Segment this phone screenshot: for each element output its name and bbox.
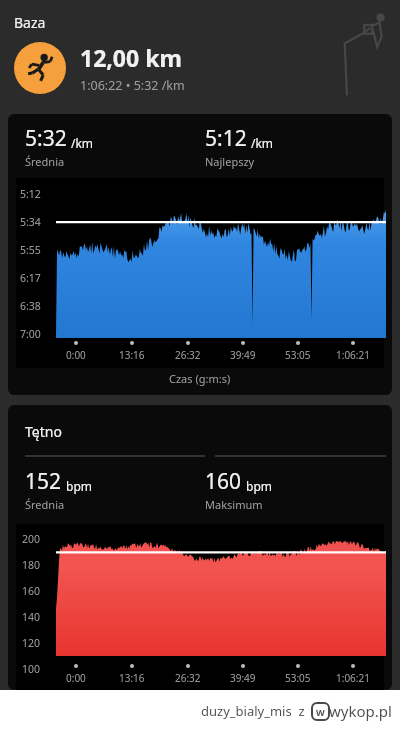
staticText: 180 [22, 558, 41, 572]
staticText: 6:38 [20, 299, 41, 313]
staticText: 13:16 [119, 671, 145, 685]
staticText: 6:17 [20, 271, 41, 285]
staticText: W [316, 706, 325, 718]
staticText: 160 [205, 467, 242, 496]
staticText: 120 [22, 636, 41, 650]
button[interactable]: 12,00 km [14, 42, 185, 94]
other: Route map [338, 10, 394, 98]
staticText: 26:32 [175, 348, 201, 362]
staticText: 5:12 [20, 187, 41, 201]
staticText: 39:49 [230, 671, 256, 685]
staticText: /km [71, 135, 94, 151]
staticText: 160 [22, 584, 41, 598]
staticText: 39:49 [230, 348, 256, 362]
staticText: 1:06:21 [336, 671, 370, 685]
staticText: 5:12 [205, 124, 247, 153]
staticText: 1:06:21 [336, 348, 370, 362]
staticText: 13:16 [119, 348, 145, 362]
staticText: 5:55 [20, 243, 41, 257]
staticText: 140 [22, 610, 41, 624]
staticText: 152 [25, 467, 62, 496]
staticText: duzy_bialy_mis z [201, 702, 305, 720]
staticText: 0:00 [66, 671, 86, 685]
button[interactable]: Tętno [8, 405, 392, 690]
staticText: 200 [22, 532, 41, 546]
staticText: 100 [22, 662, 41, 676]
staticText: 5:32 [25, 124, 67, 153]
staticText: wykop.pl [329, 701, 392, 721]
staticText: Czas (g:m:s) [169, 371, 231, 386]
staticText: bpm [66, 478, 92, 494]
staticText: 53:05 [285, 671, 311, 685]
staticText: Średnia [25, 497, 65, 512]
staticText: Średnia [25, 154, 65, 169]
staticText: bpm [246, 478, 272, 494]
staticText: Najlepszy [205, 154, 255, 169]
staticText: /km [251, 135, 274, 151]
staticText: Maksimum [205, 497, 263, 512]
staticText: Baza [14, 13, 46, 32]
button[interactable]: 5:32 [8, 114, 392, 395]
staticText: 7:00 [20, 327, 41, 341]
staticText: 53:05 [285, 348, 311, 362]
staticText: Tętno [25, 422, 62, 441]
staticText: 0:00 [66, 348, 86, 362]
staticText: 5:34 [20, 215, 41, 229]
staticText: 1:06:22 • 5:32 /km [80, 77, 185, 94]
staticText: 26:32 [175, 671, 201, 685]
staticText: 12,00 km [80, 42, 182, 73]
